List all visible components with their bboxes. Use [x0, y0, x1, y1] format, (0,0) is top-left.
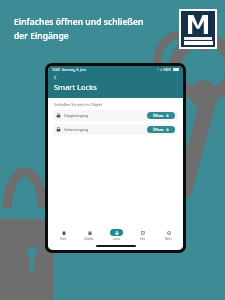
staticText: ⌃ ▾ 100% — [157, 68, 172, 72]
staticText: Schließen Sie jetzt ihr Objekt — [54, 102, 103, 107]
button[interactable]: Öffnen — [147, 112, 175, 119]
button[interactable]: Mehr — [157, 229, 179, 241]
button[interactable]: Back — [52, 74, 59, 81]
staticText: Info — [140, 237, 145, 241]
button[interactable]: Haupteingang — [53, 110, 178, 121]
staticText: Objekte — [84, 237, 94, 241]
button[interactable]: Öffnen — [147, 126, 175, 133]
staticText: Locks — [113, 237, 120, 241]
staticText: Smart Locks — [54, 82, 97, 92]
button[interactable]: Seiteneingang — [53, 124, 178, 135]
staticText: Seiteneingang — [64, 127, 89, 132]
staticText: der Eingänge — [14, 30, 69, 42]
button[interactable]: Info — [131, 229, 153, 241]
staticText: Mehr — [165, 237, 172, 241]
button[interactable]: Objekte — [78, 229, 100, 241]
button[interactable]: Start — [52, 229, 74, 241]
button[interactable]: Locks — [105, 229, 127, 241]
staticText: Start — [60, 237, 66, 241]
staticText: Öffnen — [153, 128, 164, 132]
staticText: 14:05 Samstag, 8. Juni — [52, 68, 86, 72]
other: Marienheide Logo — [181, 11, 215, 47]
staticText: Haupteingang — [64, 113, 89, 118]
staticText: Einfaches öffnen und schließen — [14, 16, 144, 28]
staticText: Öffnen — [153, 114, 164, 118]
